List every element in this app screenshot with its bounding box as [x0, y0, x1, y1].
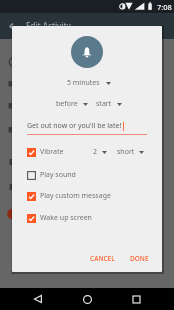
staticText: Play sound: [40, 170, 76, 180]
button[interactable]: Back: [27, 288, 49, 310]
button[interactable]: DONE: [127, 250, 152, 267]
staticText: Get out now or you'll be late!: [27, 121, 122, 131]
button[interactable]: Play custom message: [12, 185, 162, 207]
button[interactable]: Navigate up: [0, 13, 26, 39]
staticText: before: [56, 99, 78, 109]
staticText: 7:08: [157, 2, 172, 12]
button[interactable]: before: [54, 97, 90, 111]
staticText: Wake up screen: [40, 213, 92, 223]
staticText: start: [96, 99, 112, 109]
button[interactable]: short: [115, 145, 146, 159]
button[interactable]: 5 minutes: [65, 76, 113, 90]
button[interactable]: Wake up screen: [12, 207, 162, 229]
button[interactable]: CANCEL: [87, 250, 118, 267]
button[interactable]: Home: [76, 288, 98, 310]
staticText: DONE: [130, 254, 149, 263]
staticText: 5 minutes: [67, 78, 100, 88]
button[interactable]: Get out now or you'll be late!: [27, 121, 124, 131]
staticText: Vibrate: [40, 147, 64, 157]
button[interactable]: 2: [91, 145, 109, 159]
button[interactable]: start: [94, 97, 124, 111]
staticText: 2: [93, 147, 98, 157]
staticText: CANCEL: [90, 254, 115, 263]
staticText: Play custom message: [40, 191, 111, 201]
button[interactable]: Recent apps: [125, 288, 147, 310]
button[interactable]: Play sound: [12, 164, 162, 186]
staticText: short: [117, 147, 135, 157]
button[interactable]: Vibrate: [12, 141, 162, 163]
staticText: Edit Activity: [26, 20, 71, 31]
